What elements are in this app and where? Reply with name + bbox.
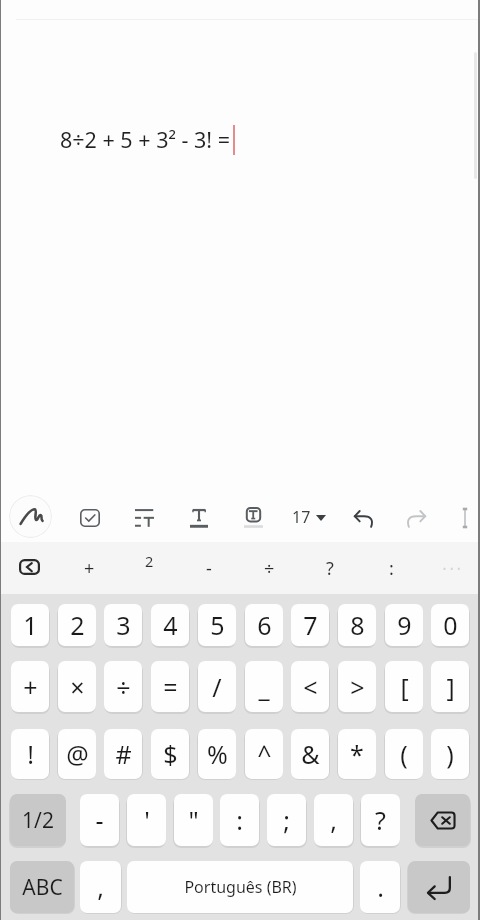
button[interactable]: 1/2 (10, 794, 66, 846)
staticText: ( (400, 737, 408, 771)
staticText: 4 (163, 608, 178, 642)
button[interactable]: / (198, 661, 236, 712)
button[interactable]: ABC (10, 861, 74, 913)
button[interactable]: , (80, 861, 121, 913)
button[interactable]: = (151, 661, 189, 712)
button[interactable]: Underline (182, 501, 216, 536)
staticText: : (389, 556, 394, 581)
staticText: ; (283, 803, 290, 837)
staticText: - (95, 803, 104, 837)
button[interactable]: 8 (338, 604, 376, 646)
button[interactable]: _ (245, 661, 283, 712)
button[interactable]: ; (267, 794, 306, 846)
staticText: $ (163, 737, 178, 771)
button[interactable]: ' (127, 794, 166, 846)
button[interactable]: ? (306, 542, 354, 594)
staticText: ^ (257, 737, 272, 771)
staticText: × (70, 670, 85, 704)
staticText: + (23, 670, 38, 704)
staticText: # (115, 737, 132, 771)
staticText: ] (446, 670, 455, 704)
staticText: 3 (116, 608, 131, 642)
staticText: % (207, 737, 228, 771)
button[interactable]: % (198, 729, 236, 779)
button[interactable]: Cursor (452, 500, 478, 536)
staticText: ? (375, 803, 386, 837)
button[interactable]: Font size (308, 507, 334, 529)
staticText: " (188, 803, 199, 837)
button[interactable]: Previous symbols (11, 551, 48, 583)
button[interactable]: . (360, 861, 400, 913)
button[interactable]: 0 (431, 604, 469, 646)
staticText: 5 (210, 608, 225, 642)
button[interactable]: ) (431, 729, 469, 779)
button[interactable]: ÷ (245, 542, 293, 594)
button[interactable]: ] (431, 661, 469, 712)
staticText: 7 (303, 608, 318, 642)
staticText: ABC (22, 873, 63, 902)
staticText: . (377, 870, 384, 904)
button[interactable]: Text box (236, 499, 271, 536)
button[interactable]: ( (385, 729, 423, 779)
staticText: ? (326, 556, 334, 581)
button[interactable]: ^ (245, 729, 283, 779)
staticText: & (301, 737, 320, 771)
button[interactable]: , (314, 794, 353, 846)
staticText: _ (258, 670, 270, 704)
button[interactable]: [ (385, 661, 423, 712)
button[interactable]: Handwriting (9, 495, 52, 538)
button[interactable]: < (291, 661, 329, 712)
staticText: 0 (443, 608, 458, 642)
staticText: ! (27, 737, 34, 771)
button[interactable]: 6 (245, 604, 283, 646)
staticText: / (212, 670, 222, 704)
button[interactable]: + (65, 542, 113, 594)
button[interactable]: & (291, 729, 329, 779)
staticText: 8 (350, 608, 365, 642)
button[interactable]: 2 (125, 542, 173, 594)
staticText: 6 (257, 608, 272, 642)
button[interactable]: : (220, 794, 259, 846)
button[interactable]: ! (11, 729, 49, 779)
staticText: + (84, 556, 95, 581)
button[interactable]: Backspace (415, 794, 470, 846)
staticText: 2 (145, 551, 154, 571)
button[interactable]: # (104, 729, 142, 779)
button[interactable]: 3 (104, 604, 142, 646)
button[interactable]: - (80, 794, 119, 846)
button[interactable]: 4 (151, 604, 189, 646)
button[interactable]: 1 (11, 604, 49, 646)
staticText: 9 (397, 608, 412, 642)
staticText: < (303, 670, 318, 704)
button[interactable]: 5 (198, 604, 236, 646)
button[interactable]: @ (58, 729, 96, 779)
staticText: ÷ (264, 556, 275, 581)
staticText: 17 (292, 506, 311, 528)
button[interactable]: Português (BR) (127, 861, 353, 913)
staticText: ) (446, 737, 454, 771)
button[interactable]: 9 (385, 604, 423, 646)
button[interactable]: - (185, 542, 233, 594)
button[interactable]: + (11, 661, 49, 712)
staticText: 1 (23, 608, 38, 642)
button[interactable]: ÷ (104, 661, 142, 712)
button[interactable]: ? (361, 794, 400, 846)
button[interactable]: : (367, 542, 415, 594)
button[interactable]: " (174, 794, 213, 846)
button[interactable]: Undo (346, 501, 381, 535)
button[interactable]: 2 (58, 604, 96, 646)
button[interactable]: × (58, 661, 96, 712)
staticText: 1/2 (22, 806, 54, 835)
button[interactable]: Redo (399, 501, 434, 535)
button[interactable]: Enter (408, 861, 470, 913)
button[interactable]: 7 (291, 604, 329, 646)
staticText: : (236, 803, 243, 837)
button[interactable]: > (338, 661, 376, 712)
button[interactable]: * (338, 729, 376, 779)
button[interactable]: Paragraph style (127, 501, 162, 535)
staticText: , (330, 803, 337, 837)
button[interactable]: Checklist (72, 501, 108, 535)
button[interactable]: $ (151, 729, 189, 779)
staticText: = (163, 670, 178, 704)
